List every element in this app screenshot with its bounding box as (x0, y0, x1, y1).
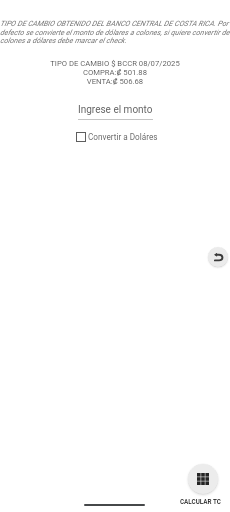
other: Calcular tipo de cambio (188, 464, 218, 494)
button[interactable]: Convertir a Doláres (76, 132, 158, 142)
staticText: COMPRA:₡ 501.88 (0, 68, 230, 77)
staticText: Convertir a Doláres (88, 132, 158, 142)
button[interactable]: Ingrese el monto (78, 104, 153, 120)
staticText: TIPO DE CAMBIO $ BCCR 08/07/2025 (0, 59, 230, 68)
staticText: TIPO DE CAMBIO OBTENIDO DEL BANCO CENTRA… (0, 19, 230, 44)
button[interactable]: Deshacer (208, 247, 228, 267)
staticText: Ingrese el monto (78, 104, 153, 116)
button[interactable]: Calcular tipo de cambio (182, 464, 223, 505)
staticText: VENTA:₡ 506.68 (0, 77, 230, 86)
staticText: CALCULAR TC (180, 498, 221, 505)
